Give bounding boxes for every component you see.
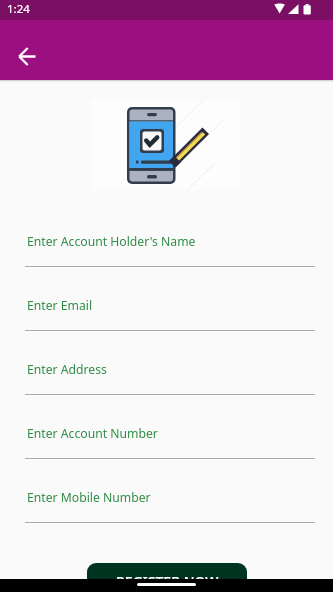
button[interactable]: Back <box>7 37 46 76</box>
button[interactable]: Enter Email <box>0 297 333 331</box>
staticText: Enter Account Holder's Name <box>27 233 196 250</box>
staticText: Enter Address <box>27 361 107 378</box>
button[interactable]: Enter Account Holder's Name <box>0 233 333 267</box>
button[interactable]: REGISTER NOW <box>87 563 247 592</box>
staticText: REGISTER NOW <box>116 572 219 591</box>
button[interactable]: Enter Address <box>0 361 333 395</box>
button[interactable]: Enter Mobile Number <box>0 489 333 523</box>
staticText: Enter Email <box>27 297 93 314</box>
button[interactable]: Enter Account Number <box>0 425 333 459</box>
staticText: Enter Account Number <box>27 425 158 442</box>
staticText: 1:24 <box>7 1 30 17</box>
staticText: Enter Mobile Number <box>27 489 151 506</box>
